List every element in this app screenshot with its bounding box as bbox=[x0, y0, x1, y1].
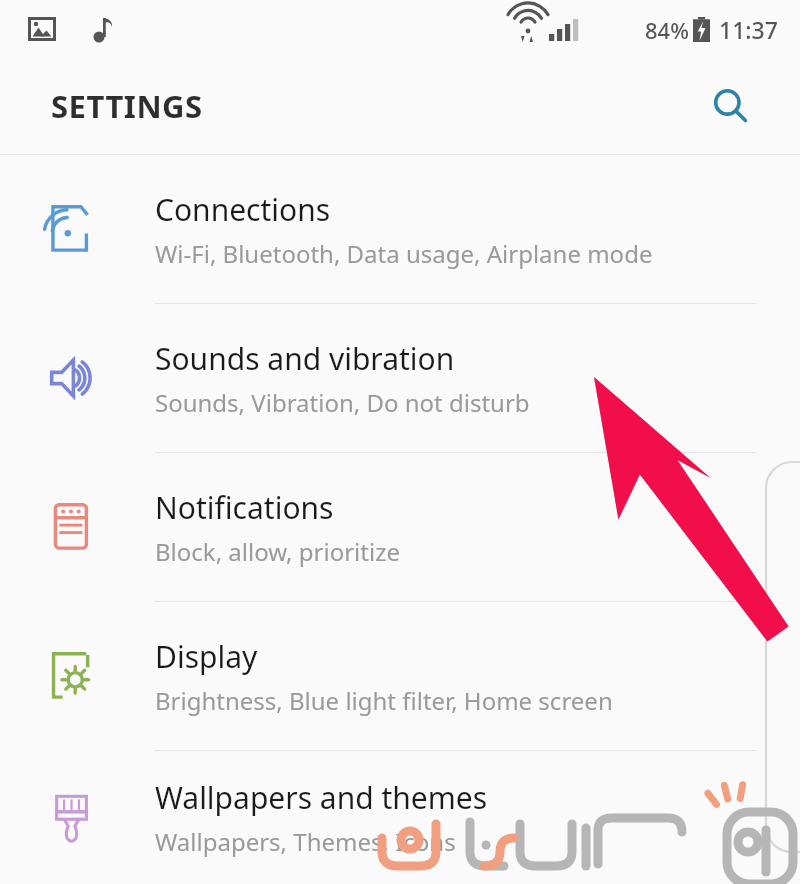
staticText: Sounds and vibration bbox=[155, 338, 455, 379]
staticText: Brightness, Blue light filter, Home scre… bbox=[155, 684, 613, 717]
staticText: Wi-Fi, Bluetooth, Data usage, Airplane m… bbox=[155, 237, 653, 270]
staticText: Display bbox=[155, 636, 258, 677]
staticText: 84% bbox=[645, 15, 689, 45]
staticText: Connections bbox=[155, 189, 331, 230]
button[interactable]: Wallpapers and themes bbox=[0, 751, 800, 884]
staticText: Block, allow, prioritize bbox=[155, 535, 400, 568]
staticText: Wallpapers, Themes, Icons bbox=[155, 825, 456, 858]
button[interactable]: Sounds and vibration bbox=[0, 304, 800, 452]
staticText: Wallpapers and themes bbox=[155, 777, 488, 818]
staticText: 11:37 bbox=[719, 14, 778, 45]
button[interactable]: Connections bbox=[0, 155, 800, 303]
button[interactable]: Search bbox=[704, 80, 756, 132]
button[interactable]: Display bbox=[0, 602, 800, 750]
button[interactable]: Notifications bbox=[0, 453, 800, 601]
staticText: SETTINGS bbox=[51, 85, 203, 127]
staticText: Notifications bbox=[155, 487, 334, 528]
staticText: Sounds, Vibration, Do not disturb bbox=[155, 386, 530, 419]
